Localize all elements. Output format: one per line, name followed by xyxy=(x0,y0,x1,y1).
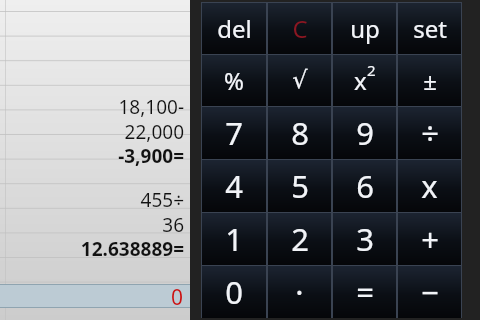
button[interactable]: Percent xyxy=(201,54,267,106)
button[interactable]: x xyxy=(332,54,397,106)
button[interactable]: C xyxy=(267,2,332,54)
staticText: C xyxy=(292,12,308,45)
staticText: + xyxy=(421,218,439,260)
staticText: 18,100- xyxy=(0,94,184,120)
button[interactable]: Add xyxy=(397,212,462,265)
button[interactable]: Plus minus xyxy=(397,54,462,106)
staticText: √ xyxy=(292,66,308,94)
staticText: 455÷ xyxy=(0,187,184,213)
button[interactable]: 4 xyxy=(201,159,267,212)
button[interactable]: Subtract xyxy=(397,265,462,318)
staticText: x xyxy=(354,64,367,97)
staticText: 3 xyxy=(356,218,374,260)
staticText: 7 xyxy=(225,112,243,154)
button[interactable]: Square root xyxy=(267,54,332,106)
button[interactable]: 0 xyxy=(0,283,190,312)
staticText: 36 xyxy=(0,212,184,238)
staticText: 8 xyxy=(291,112,309,154)
staticText: -3,900= xyxy=(0,143,184,169)
button[interactable]: set xyxy=(397,2,462,54)
button[interactable]: 1 xyxy=(201,212,267,265)
button[interactable]: 2 xyxy=(267,212,332,265)
staticText: ÷ xyxy=(421,112,439,154)
staticText: 0 xyxy=(0,283,183,312)
button[interactable]: Divide xyxy=(397,106,462,159)
button[interactable]: Equals xyxy=(332,265,397,318)
staticText: ± xyxy=(423,64,437,97)
button[interactable]: Decimal point xyxy=(267,265,332,318)
staticText: · xyxy=(295,271,304,313)
button[interactable]: 9 xyxy=(332,106,397,159)
staticText: = xyxy=(356,271,374,313)
staticText: − xyxy=(421,271,439,313)
staticText: 1 xyxy=(225,218,243,260)
staticText: 9 xyxy=(356,112,374,154)
button[interactable]: 5 xyxy=(267,159,332,212)
button[interactable]: 0 xyxy=(201,265,267,318)
staticText: 2 xyxy=(291,218,309,260)
button[interactable]: 8 xyxy=(267,106,332,159)
button[interactable]: 7 xyxy=(201,106,267,159)
staticText: 22,000 xyxy=(0,119,184,145)
staticText: 2 xyxy=(367,60,376,80)
button[interactable]: 3 xyxy=(332,212,397,265)
staticText: 6 xyxy=(356,165,374,207)
button[interactable]: del xyxy=(201,2,267,54)
button[interactable]: x xyxy=(397,159,462,212)
staticText: up xyxy=(350,12,380,45)
staticText: 4 xyxy=(225,165,243,207)
button[interactable]: 6 xyxy=(332,159,397,212)
staticText: 0 xyxy=(225,271,243,313)
staticText: 12.638889= xyxy=(0,236,184,262)
staticText: x xyxy=(421,165,438,207)
button[interactable]: up xyxy=(332,2,397,54)
staticText: 5 xyxy=(291,165,309,207)
staticText: % xyxy=(224,64,244,97)
staticText: set xyxy=(413,12,447,45)
staticText: del xyxy=(217,12,252,45)
